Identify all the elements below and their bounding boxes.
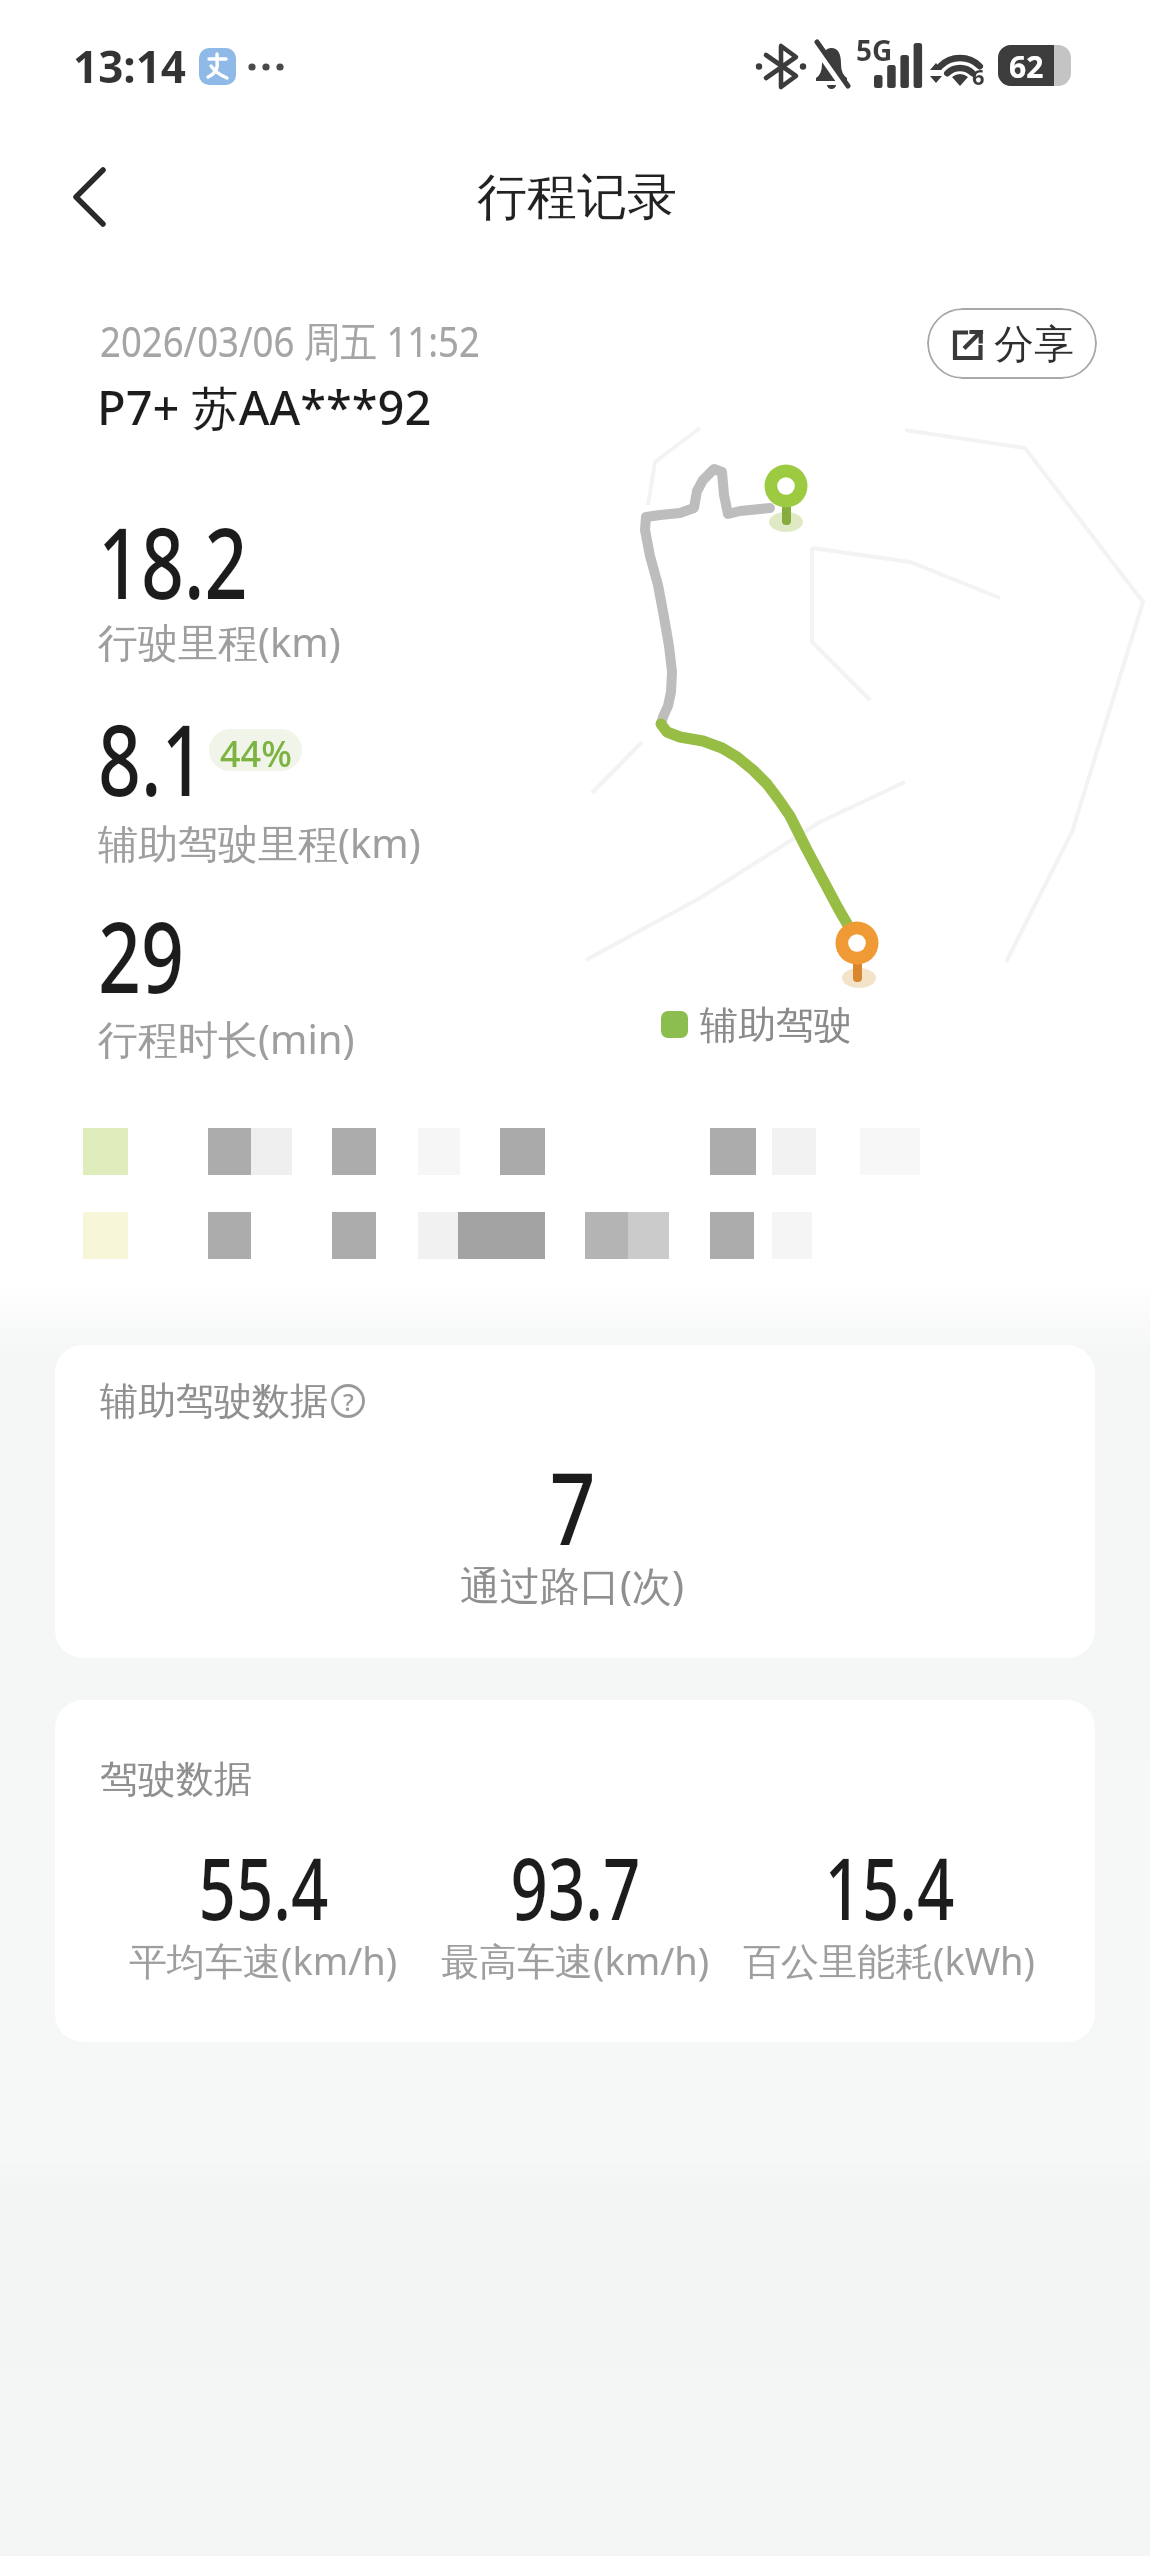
staticText: ? [343, 1385, 354, 1418]
button[interactable] [56, 167, 126, 229]
staticText: 辅助驾驶 [700, 1001, 852, 1049]
button[interactable]: 分享 [927, 308, 1097, 379]
staticText: P7+ 苏AA***92 [97, 375, 432, 439]
staticText: 最高车速(km/h) [441, 1934, 710, 1986]
staticText: 分享 [994, 319, 1074, 369]
staticText: 8.1 [98, 690, 205, 825]
staticText: 辅助驾驶里程(km) [98, 815, 421, 870]
staticText: 44% [220, 729, 292, 771]
staticText: 百公里能耗(kWh) [743, 1934, 1035, 1986]
staticText: 5G [856, 31, 893, 69]
staticText: 驾驶数据 [100, 1755, 252, 1803]
staticText: 13:14 [73, 36, 187, 96]
staticText: 7 [550, 1438, 596, 1574]
staticText: 29 [98, 887, 185, 1022]
staticText: 行驶里程(km) [98, 614, 341, 669]
staticText: 18.2 [98, 493, 248, 628]
staticText: 平均车速(km/h) [129, 1934, 398, 1986]
staticText: 62 [1009, 46, 1044, 87]
staticText: 行程记录 [477, 166, 677, 229]
staticText: 通过路口(次) [460, 1557, 684, 1612]
staticText: 93.7 [510, 1828, 640, 1945]
button[interactable]: ? [326, 1379, 370, 1423]
staticText: 15.4 [824, 1828, 954, 1945]
staticText: 55.4 [198, 1828, 328, 1945]
staticText: 行程时长(min) [98, 1011, 355, 1066]
staticText: 6 [972, 61, 985, 91]
staticText: 2026/03/06 周五 11:52 [100, 312, 480, 369]
staticText: 辅助驾驶数据 [100, 1377, 328, 1425]
